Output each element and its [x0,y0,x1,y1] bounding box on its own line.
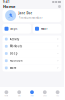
button[interactable]: You [51,90,64,97]
staticText: 9:41 [3,0,10,4]
staticText: Water [41,27,48,30]
button[interactable]: More [2,64,61,71]
staticText: Stats [18,95,21,97]
staticText: > [57,66,59,70]
button[interactable]: Chat [38,90,51,97]
button[interactable]: Nutrition [2,57,61,64]
button[interactable]: Sleep [2,50,61,57]
staticText: > [57,44,59,48]
staticText: Chat [43,95,46,97]
button[interactable]: Steps [2,24,31,33]
staticText: Sleep [10,52,18,55]
staticText: > [57,37,59,41]
button[interactable]: Activity [2,35,61,43]
staticText: > [57,59,59,62]
button[interactable]: Stats [13,90,26,97]
staticText: Activity [10,37,19,41]
staticText: Premium member [18,16,42,20]
button[interactable]: Water [33,24,61,33]
staticText: Workouts [10,44,22,48]
staticText: Jane Doe [18,11,32,15]
staticText: More [10,66,17,70]
button[interactable]: Notifications [58,5,61,8]
staticText: Home [3,4,15,9]
staticText: > [57,52,59,55]
staticText: You [56,95,59,97]
staticText: Home [4,95,8,97]
staticText: Steps [10,27,17,30]
staticText: Add [30,95,33,97]
button[interactable]: Workouts [2,43,61,50]
staticText: Nutrition [10,59,23,62]
button[interactable]: Add [26,90,38,97]
button[interactable]: Home [0,90,13,97]
